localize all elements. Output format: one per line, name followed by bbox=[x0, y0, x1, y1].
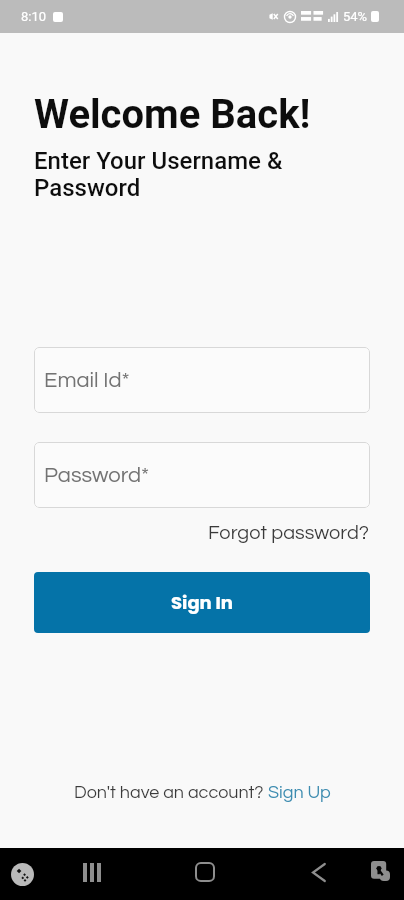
staticText: Password* bbox=[44, 464, 150, 487]
staticText: Welcome Back! bbox=[34, 91, 311, 138]
button[interactable]: Recent apps bbox=[82, 863, 101, 882]
button[interactable]: Sign In bbox=[34, 572, 370, 633]
staticText: Sign In bbox=[171, 590, 233, 615]
staticText: 8:10 bbox=[21, 9, 47, 24]
button[interactable]: Password* bbox=[34, 442, 370, 508]
button[interactable]: Hide keyboard bbox=[371, 861, 390, 882]
button[interactable]: Assistant bbox=[11, 863, 34, 886]
button[interactable]: Back bbox=[311, 863, 326, 882]
staticText: Email Id* bbox=[44, 369, 130, 392]
staticText: Enter Your Username & Password bbox=[34, 147, 370, 202]
staticText: 54% bbox=[343, 9, 368, 24]
button[interactable]: Home bbox=[196, 863, 214, 881]
button[interactable]: Email Id* bbox=[34, 347, 370, 413]
button[interactable]: Sign Up bbox=[268, 783, 331, 802]
staticText: Don't have an account? bbox=[74, 783, 268, 802]
button[interactable]: Forgot password? bbox=[208, 523, 370, 544]
